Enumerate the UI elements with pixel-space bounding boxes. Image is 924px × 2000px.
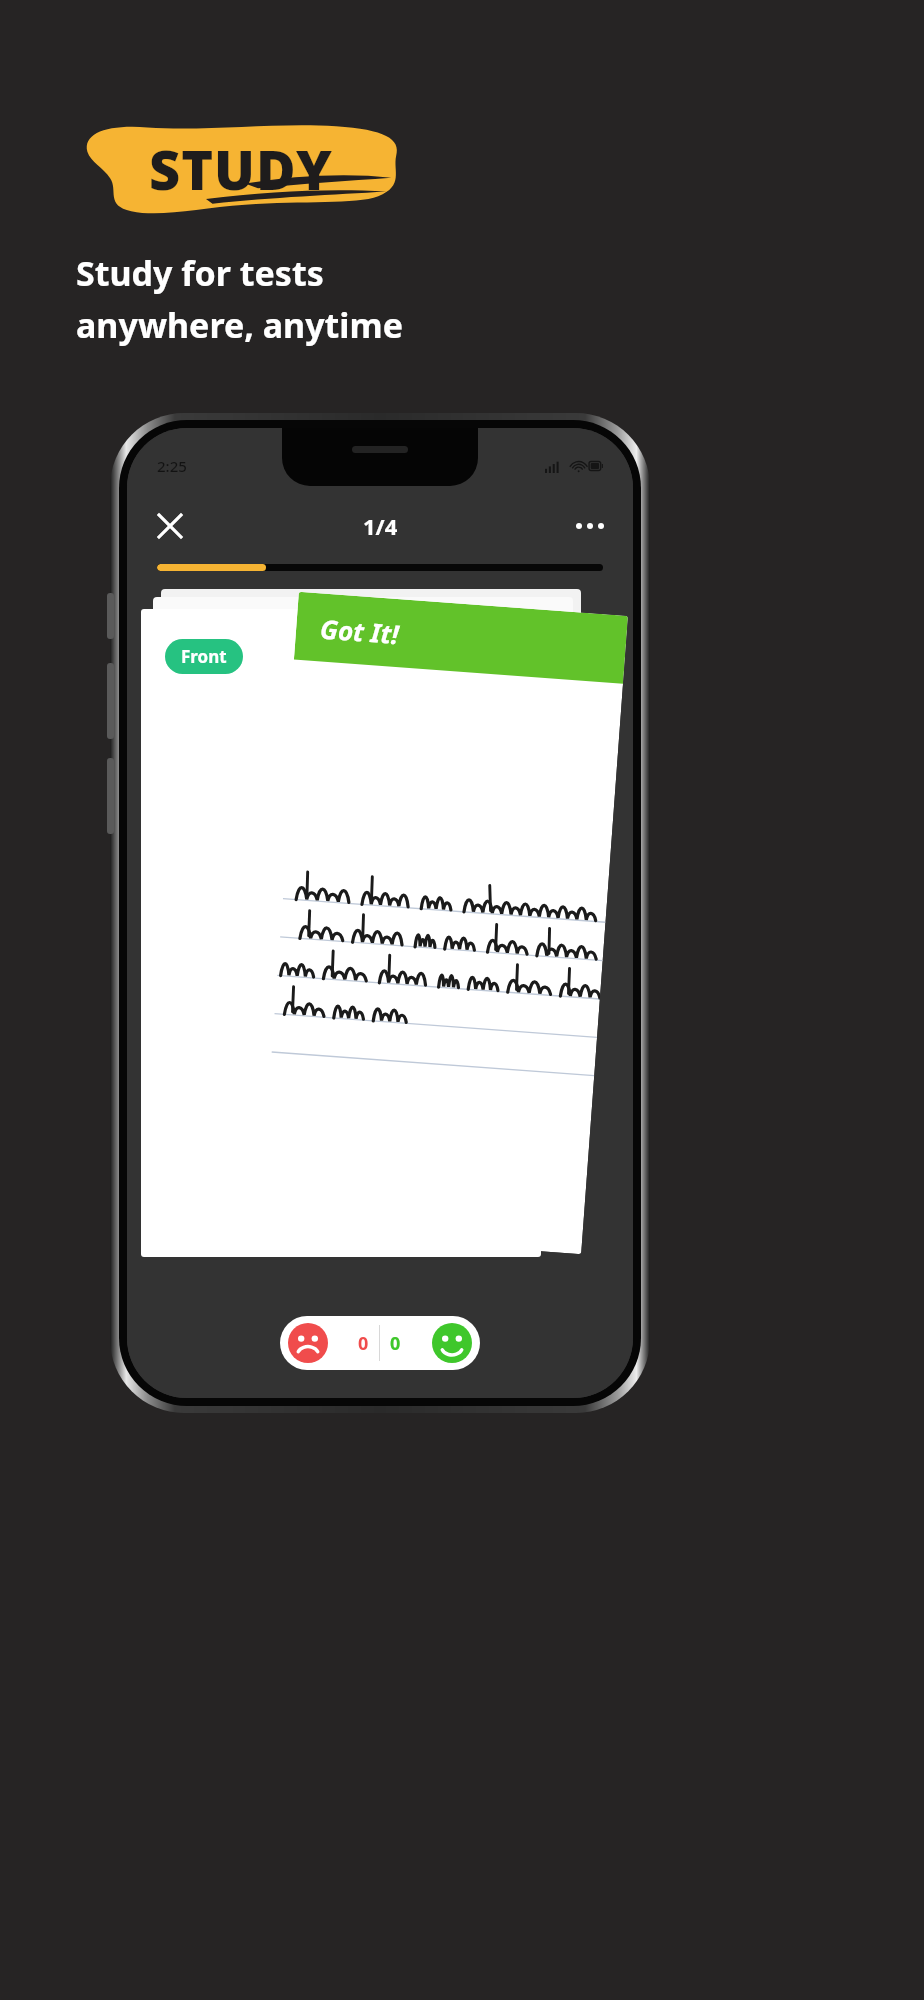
staticText: Got It! <box>319 610 400 651</box>
staticText: 1/4 <box>363 511 398 541</box>
button[interactable]: Close <box>147 503 193 549</box>
button[interactable]: 0 <box>280 1316 379 1370</box>
staticText: Front <box>181 645 227 668</box>
staticText: 2:25 <box>157 456 187 476</box>
button[interactable]: Got It! <box>252 592 628 1254</box>
staticText: Study for tests <box>76 250 324 296</box>
button[interactable]: More options <box>567 503 613 549</box>
button[interactable]: 1/4 <box>363 511 398 541</box>
button[interactable]: Front <box>165 639 243 674</box>
button[interactable]: 0 <box>380 1316 480 1370</box>
staticText: 0 <box>358 1331 369 1356</box>
staticText: STUDY <box>149 132 333 206</box>
staticText: 0 <box>390 1331 401 1356</box>
staticText: anywhere, anytime <box>76 302 403 348</box>
button[interactable]: Front <box>141 609 541 1257</box>
